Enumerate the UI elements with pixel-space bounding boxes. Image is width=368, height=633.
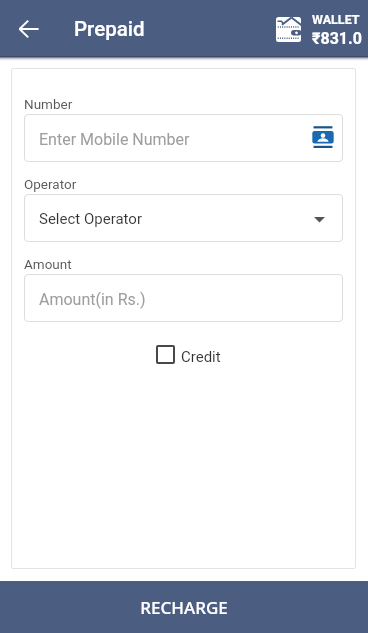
staticText: Operator	[24, 176, 77, 192]
staticText: Select Operator	[39, 210, 142, 228]
staticText: Enter Mobile Number	[39, 130, 190, 149]
staticText: Credit	[181, 348, 221, 366]
button[interactable]: Select Operator	[24, 194, 343, 242]
staticText: Number	[24, 96, 73, 112]
button[interactable]: RECHARGE	[0, 581, 368, 633]
button[interactable]: Pick contact	[309, 124, 337, 152]
button[interactable]: Credit	[154, 342, 223, 367]
button[interactable]: Amount(in Rs.)	[24, 274, 343, 322]
staticText: Amount	[24, 256, 72, 272]
staticText: Prepaid	[74, 17, 145, 41]
staticText: WALLET	[312, 12, 360, 25]
button[interactable]: Enter Mobile Number	[24, 114, 343, 162]
button[interactable]: WALLET	[276, 12, 362, 44]
staticText: RECHARGE	[140, 596, 228, 619]
button[interactable]: Back	[10, 9, 48, 47]
staticText: Amount(in Rs.)	[39, 290, 146, 309]
staticText: ₹831.0	[312, 29, 362, 48]
